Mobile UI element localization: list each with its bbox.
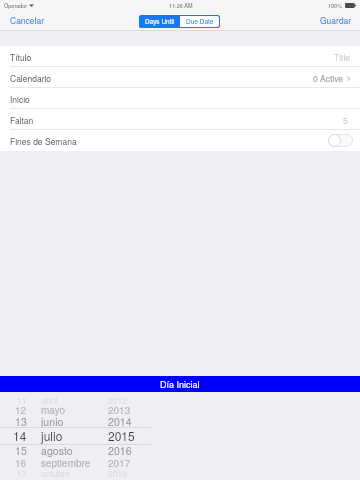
staticText: Inicio	[10, 93, 30, 105]
staticText: 2012	[108, 394, 128, 406]
staticText: 2018	[108, 467, 128, 479]
staticText: 17	[17, 467, 27, 479]
button[interactable]: Due Date	[180, 15, 220, 28]
button[interactable]: Inicio	[0, 88, 360, 109]
staticText: Title	[334, 51, 351, 63]
staticText: Due Date	[186, 17, 214, 26]
staticText: 100%	[328, 2, 343, 10]
staticText: Days Until	[145, 17, 175, 26]
staticText: 0 Active	[313, 72, 343, 84]
button[interactable]: 14	[0, 426, 360, 444]
button[interactable]: 15	[0, 442, 360, 458]
button[interactable]: Título	[0, 46, 360, 67]
button[interactable]: 12	[0, 402, 360, 417]
staticText: 13	[15, 414, 27, 429]
staticText: 14	[13, 427, 27, 444]
staticText: octubre	[41, 467, 70, 479]
button[interactable]: Calendario	[0, 67, 360, 88]
staticText: Operador	[4, 2, 28, 10]
staticText: 11:26 AM	[169, 2, 193, 10]
button[interactable]: Fines de Semana	[0, 130, 360, 151]
staticText: 2015	[108, 427, 135, 444]
staticText: agosto	[41, 443, 73, 458]
staticText: junio	[41, 414, 64, 429]
button[interactable]: Days Until	[139, 15, 180, 28]
staticText: septiembre	[41, 456, 91, 470]
staticText: Faltan	[10, 114, 34, 126]
staticText: 15	[15, 443, 27, 458]
staticText: Día Inicial	[160, 378, 200, 391]
staticText: 2013	[108, 403, 131, 417]
button[interactable]: 16	[0, 455, 360, 470]
button[interactable]: Cancelar	[6, 11, 49, 29]
staticText: mayo	[41, 403, 65, 417]
staticText: 5	[343, 114, 348, 126]
button[interactable]: Guardar	[318, 11, 354, 29]
staticText: 2016	[108, 443, 132, 458]
staticText: 12	[15, 403, 27, 417]
button[interactable]: 17	[0, 466, 360, 479]
staticText: Título	[10, 51, 32, 63]
staticText: 2014	[108, 414, 132, 429]
staticText: 2017	[108, 456, 131, 470]
staticText: Calendario	[10, 72, 52, 84]
staticText: abril	[41, 394, 58, 406]
staticText: Fines de Semana	[10, 135, 77, 147]
button[interactable]: 13	[0, 413, 360, 429]
staticText: 11	[17, 394, 27, 406]
staticText: 16	[15, 456, 27, 470]
staticText: Cancelar	[10, 14, 45, 26]
staticText: Guardar	[320, 14, 352, 26]
staticText: julio	[41, 427, 63, 444]
button[interactable]: Faltan	[0, 109, 360, 130]
button[interactable]: Fines de Semana switch	[328, 134, 353, 147]
